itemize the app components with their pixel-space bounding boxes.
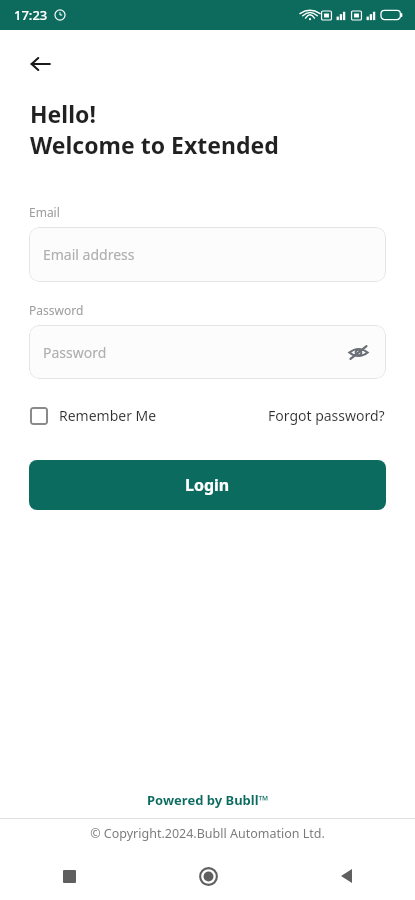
staticText: Login xyxy=(185,474,230,496)
button[interactable]: Back xyxy=(277,852,415,900)
staticText: Email address xyxy=(43,245,135,264)
button[interactable]: Back xyxy=(18,42,62,86)
button[interactable]: Recent apps xyxy=(0,852,139,900)
button[interactable]: Remember Me xyxy=(30,406,157,425)
button[interactable]: Show password xyxy=(340,334,376,370)
button[interactable]: Forgot password? xyxy=(268,406,385,425)
staticText: Password xyxy=(43,343,107,362)
button[interactable]: Powered by Bubll™ xyxy=(0,791,415,809)
staticText: Powered by Bubll™ xyxy=(147,791,269,809)
staticText: Email xyxy=(29,204,60,220)
staticText: Hello! xyxy=(30,98,96,129)
staticText: Remember Me xyxy=(59,406,157,425)
button[interactable]: Email address xyxy=(29,227,386,282)
staticText: Password xyxy=(29,302,84,318)
staticText: 17:23 xyxy=(14,6,48,24)
button[interactable]: Login xyxy=(29,460,386,510)
staticText: © Copyright.2024.Bubll Automation Ltd. xyxy=(0,825,415,842)
staticText: Welcome to Extended xyxy=(30,129,279,160)
staticText: Forgot password? xyxy=(268,406,385,425)
button[interactable]: Home xyxy=(139,852,277,900)
button[interactable]: Password xyxy=(29,325,386,379)
